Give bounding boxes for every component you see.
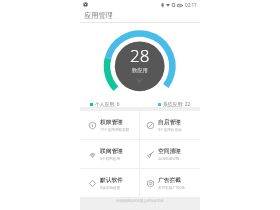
button[interactable]: Network — [80, 140, 139, 168]
staticText: 应用管理 — [84, 11, 113, 20]
staticText: 个人应用: 6 — [95, 101, 120, 108]
button[interactable]: Ad block — [140, 169, 200, 197]
staticText: 24.80GB可用 — [158, 156, 180, 161]
staticText: 17个应用获取权限 — [100, 127, 130, 132]
other: Defaults — [89, 180, 96, 187]
other: Storage — [147, 151, 154, 158]
button[interactable]: Autostart — [140, 111, 200, 139]
staticText: 02:17 — [185, 2, 197, 8]
staticText: 28 — [130, 44, 150, 67]
other: Permissions — [89, 122, 96, 129]
staticText: 0个应用自启动 — [158, 127, 182, 132]
staticText: 0个联网应用 — [100, 156, 121, 161]
staticText: 广告拦截 — [158, 177, 181, 184]
staticText: 联网管理 — [100, 148, 123, 155]
other: Network — [89, 151, 96, 158]
staticText: 杭州智搜科技有限公司技术支持 — [80, 199, 200, 203]
button[interactable]: Defaults — [80, 169, 139, 197]
staticText: 权限管理 — [100, 119, 123, 126]
staticText: 0项本地设置 — [100, 185, 121, 190]
other: Autostart — [147, 122, 154, 129]
staticText: 自启管理 — [158, 119, 181, 126]
staticText: 默认软件 — [100, 177, 123, 184]
staticText: 数应用 — [132, 67, 148, 74]
button[interactable]: Permissions — [80, 111, 139, 139]
staticText: 本月拦截广告0条 — [158, 185, 186, 190]
button[interactable]: Storage — [140, 140, 200, 168]
other: Ad block — [147, 180, 154, 187]
staticText: 系统应用: 22 — [163, 101, 191, 108]
staticText: 空间清理 — [158, 148, 181, 155]
